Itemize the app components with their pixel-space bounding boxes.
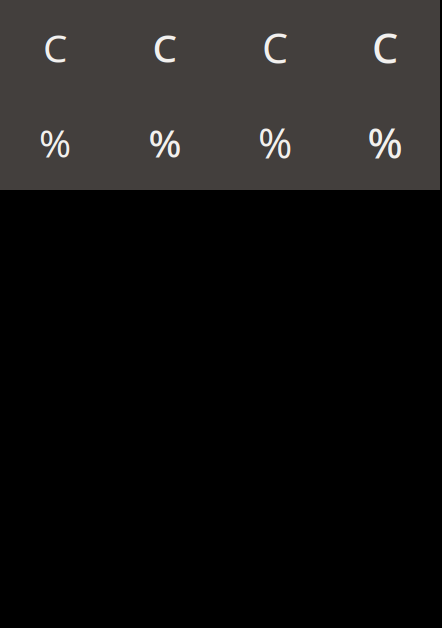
staticText: % xyxy=(148,117,181,168)
staticText: C xyxy=(262,20,288,75)
staticText: C xyxy=(152,22,177,73)
staticText: % xyxy=(258,115,292,170)
staticText: % xyxy=(367,115,402,170)
staticText: C xyxy=(372,20,398,75)
staticText: % xyxy=(39,117,71,168)
staticText: C xyxy=(43,22,67,73)
